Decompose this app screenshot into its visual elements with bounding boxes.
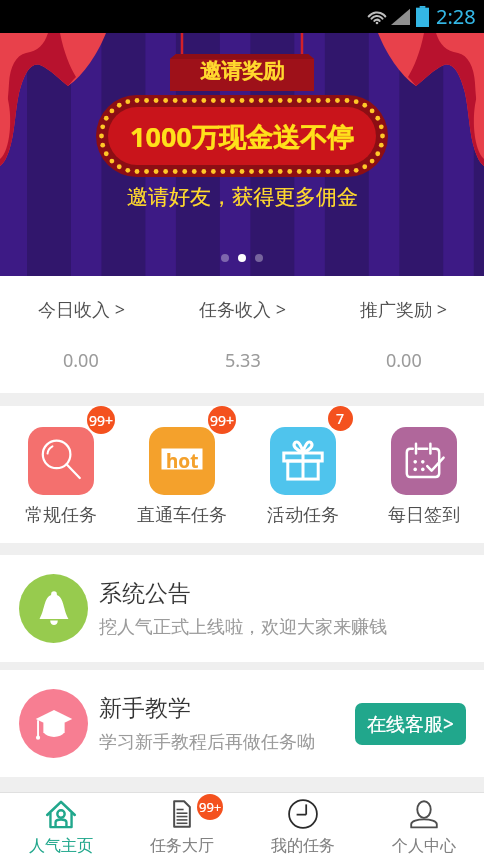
staticText: hot	[166, 448, 199, 474]
staticText: 99+	[89, 411, 114, 430]
button[interactable]: 邀请奖励	[0, 33, 484, 276]
staticText: 任务大厅	[150, 836, 214, 856]
staticText: 活动任务	[267, 504, 339, 527]
button[interactable]: 任务收入 >	[162, 276, 323, 393]
button[interactable]: 每日签到	[363, 406, 484, 543]
staticText: 新手教学	[99, 694, 191, 723]
button[interactable]: 推广奖励 >	[323, 276, 484, 393]
staticText: 直通车任务	[137, 504, 227, 527]
button[interactable]: 今日收入 >	[0, 276, 162, 393]
button[interactable]: hot	[121, 406, 242, 543]
staticText: 常规任务	[25, 504, 97, 527]
staticText: 人气主页	[29, 836, 93, 856]
staticText: 7	[336, 409, 345, 428]
staticText: 2:28	[436, 3, 476, 30]
button[interactable]: 99+	[121, 793, 242, 857]
staticText: 5.33	[225, 348, 261, 373]
button[interactable]: 我的任务	[242, 793, 363, 857]
staticText: 0.00	[63, 348, 99, 373]
staticText: 挖人气正式上线啦，欢迎大家来赚钱	[99, 616, 387, 639]
button[interactable]: 系统公告	[0, 555, 484, 662]
button[interactable]: 个人中心	[363, 793, 484, 857]
staticText: 推广奖励 >	[360, 297, 447, 322]
button[interactable]: 人气主页	[0, 793, 121, 857]
staticText: 个人中心	[392, 836, 456, 856]
staticText: 邀请好友，获得更多佣金	[127, 184, 358, 210]
staticText: 邀请奖励	[200, 58, 284, 84]
button[interactable]: 99+	[0, 406, 121, 543]
staticText: 99+	[210, 411, 235, 430]
staticText: 1000万现金送不停	[130, 118, 354, 155]
staticText: 我的任务	[271, 836, 335, 856]
staticText: 0.00	[386, 348, 422, 373]
staticText: 在线客服>	[367, 711, 454, 737]
staticText: 99+	[199, 798, 222, 816]
staticText: 每日签到	[388, 504, 460, 527]
button[interactable]: 7	[242, 406, 363, 543]
staticText: 学习新手教程后再做任务呦	[99, 731, 315, 754]
staticText: 任务收入 >	[199, 297, 286, 322]
staticText: 系统公告	[99, 579, 191, 608]
staticText: 今日收入 >	[38, 297, 125, 322]
button[interactable]: 在线客服>	[355, 703, 466, 745]
button[interactable]: 新手教学	[0, 670, 484, 777]
